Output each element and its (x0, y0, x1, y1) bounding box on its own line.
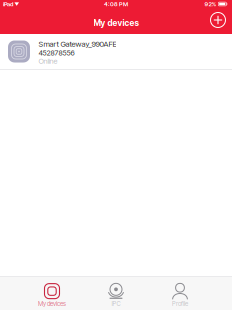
button[interactable]: Profile (154, 280, 206, 310)
button[interactable]: Add device (205, 8, 231, 34)
staticText: 4:08 PM (104, 0, 128, 8)
staticText: My devices (38, 300, 66, 307)
staticText: My devices (93, 18, 138, 28)
staticText: iPad (3, 0, 13, 8)
staticText: Smart Gateway_990AFE (38, 39, 116, 49)
button[interactable]: My devices (26, 280, 78, 310)
staticText: IPC (111, 300, 120, 307)
button[interactable]: Smart Gateway_990AFE (0, 34, 232, 70)
staticText: Profile (172, 300, 188, 307)
staticText: Online (38, 56, 57, 65)
staticText: 452878556 (38, 48, 74, 57)
button[interactable]: IPC (90, 280, 142, 310)
staticText: 92% (205, 0, 217, 8)
